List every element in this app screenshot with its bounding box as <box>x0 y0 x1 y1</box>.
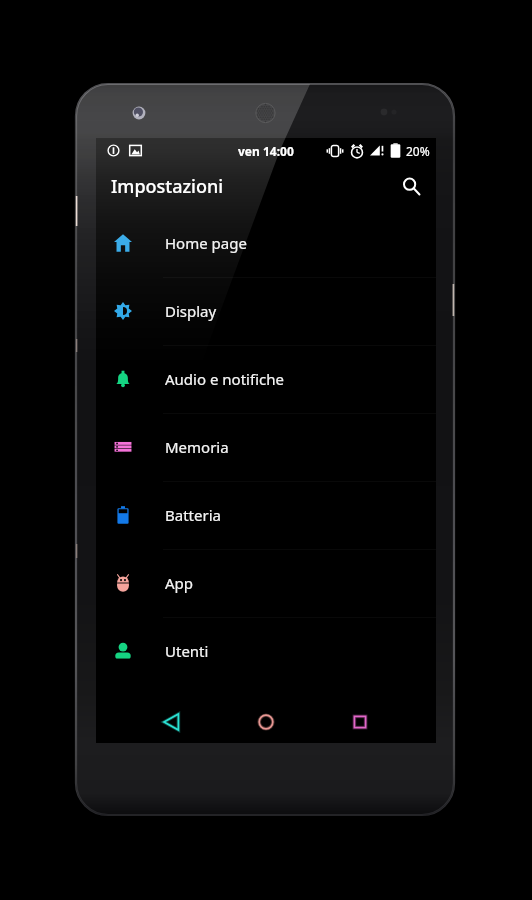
staticText: Memoria <box>165 437 229 457</box>
button[interactable]: Display <box>96 277 436 345</box>
button[interactable]: Memoria <box>96 413 436 481</box>
button[interactable]: Audio e notifiche <box>96 345 436 413</box>
staticText: Audio e notifiche <box>165 369 284 389</box>
staticText: Impostazioni <box>111 174 224 199</box>
staticText: Utenti <box>165 641 209 661</box>
button[interactable]: Utenti <box>96 617 436 685</box>
button[interactable]: Recent apps <box>339 701 381 743</box>
button[interactable]: Home page <box>96 209 436 277</box>
button[interactable]: Search <box>389 164 433 208</box>
staticText: Home page <box>165 233 247 253</box>
staticText: Display <box>165 301 217 321</box>
button[interactable]: Back <box>151 701 193 743</box>
button[interactable]: Batteria <box>96 481 436 549</box>
button[interactable]: App <box>96 549 436 617</box>
staticText: 20% <box>406 143 430 159</box>
staticText: Batteria <box>165 505 221 525</box>
staticText: App <box>165 573 194 593</box>
staticText: ven 14:00 <box>238 143 294 159</box>
button[interactable]: Home <box>245 701 287 743</box>
